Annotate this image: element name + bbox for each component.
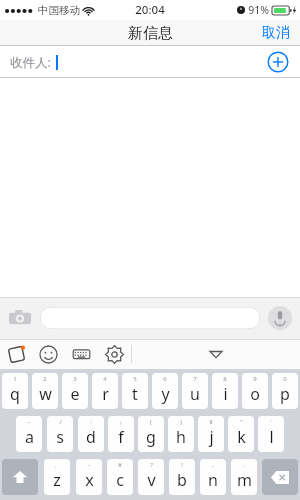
staticText: r [102,383,109,405]
staticText: - [88,461,90,469]
button[interactable]: Settings [98,339,131,369]
button[interactable]: 4 [92,373,118,409]
staticText: e [70,383,80,405]
staticText: ! [181,461,183,469]
button[interactable]: Shift [2,459,38,495]
staticText: w [39,383,52,405]
staticText: j [209,426,214,448]
button[interactable]: : [78,416,104,452]
staticText: t [132,383,138,405]
staticText: 3 [73,375,77,383]
button[interactable]: 9 [242,373,268,409]
staticText: ? [150,461,153,469]
staticText: 取消 [262,24,290,42]
button[interactable]: ; [108,416,134,452]
staticText: o [250,383,260,405]
staticText: , [212,461,214,469]
staticText: # [118,461,122,469]
staticText: ; [120,418,122,426]
staticText: a [25,426,34,448]
staticText: . [243,461,245,469]
button[interactable]: Add contact [267,51,289,73]
button[interactable]: / [47,416,73,452]
staticText: i [223,383,228,405]
staticText: n [208,469,218,491]
staticText: 2 [43,375,47,383]
staticText: ( [150,418,152,426]
button[interactable]: ( [138,416,164,452]
staticText: h [176,426,186,448]
staticText: k [237,426,246,448]
button[interactable]: - [76,459,102,495]
button[interactable]: 1 [2,373,28,409]
button[interactable]: Voice message [268,306,292,330]
staticText: 20:04 [135,2,165,18]
staticText: 7 [193,375,197,383]
button[interactable]: . [231,459,257,495]
staticText: 中国移动 [38,4,80,17]
staticText: l [269,426,274,448]
button[interactable]: 收件人: [0,46,300,78]
staticText: 新信息 [128,24,173,43]
staticText: 1 [13,375,17,383]
button[interactable]: Delete [262,459,298,495]
staticText: 9 [253,375,257,383]
staticText: 4 [103,375,107,383]
button[interactable]: 取消 [252,20,300,46]
staticText: / [59,418,62,426]
button[interactable]: ' [258,416,284,452]
button[interactable]: 6 [152,373,178,409]
button[interactable]: Hide keyboard [132,339,300,369]
staticText: 收件人: [10,54,51,71]
button[interactable] [40,307,260,329]
button[interactable]: 7 [182,373,208,409]
staticText: 5 [133,375,137,383]
staticText: : [90,418,92,426]
button[interactable]: " [228,416,254,452]
staticText: y [161,383,170,405]
staticText: v [147,469,156,491]
staticText: ¥ [209,418,213,426]
staticText: z [53,469,61,491]
staticText: q [10,383,20,405]
button[interactable]: 5 [122,373,148,409]
staticText: 0 [283,375,287,383]
staticText: u [190,383,200,405]
button[interactable]: 、 [44,459,70,495]
button[interactable]: 2 [32,373,58,409]
button[interactable]: ? [138,459,164,495]
button[interactable]: # [107,459,133,495]
button[interactable]: ! [169,459,195,495]
staticText: 8 [223,375,227,383]
staticText: ' [270,418,272,426]
button[interactable]: 3 [62,373,88,409]
staticText: p [280,383,290,405]
button[interactable]: Emoji [32,339,65,369]
staticText: d [86,426,96,448]
staticText: 91% [248,3,269,17]
staticText: ~ [27,418,31,426]
staticText: c [116,469,124,491]
button[interactable]: Keyboard layout [65,339,98,369]
staticText: f [118,426,124,448]
button[interactable]: 0 [272,373,298,409]
staticText: x [85,469,94,491]
staticText: b [177,469,187,491]
staticText: 、 [54,461,60,469]
button[interactable]: 8 [212,373,238,409]
staticText: g [146,426,156,448]
button[interactable]: ) [168,416,194,452]
staticText: 6 [163,375,167,383]
button[interactable]: ¥ [198,416,224,452]
button[interactable]: , [200,459,226,495]
button[interactable]: Sogou input [0,339,32,369]
button[interactable]: Camera [8,306,32,330]
staticText: s [56,426,64,448]
button[interactable]: ~ [16,416,42,452]
staticText: ) [180,418,182,426]
staticText: m [237,469,252,491]
staticText: " [240,418,243,426]
